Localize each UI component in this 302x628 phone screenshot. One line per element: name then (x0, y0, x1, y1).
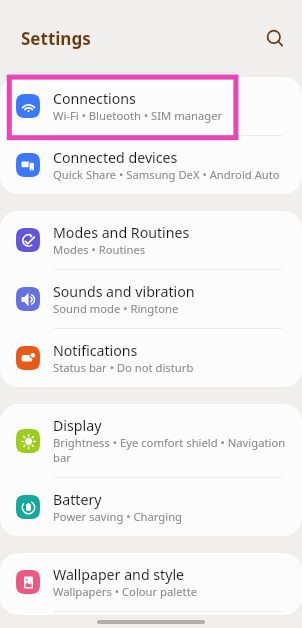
button[interactable]: Wallpaper and style (0, 553, 302, 611)
staticText: Status bar • Do not disturb (53, 360, 194, 375)
staticText: Sound mode • Ringtone (53, 301, 179, 316)
staticText: Connected devices (53, 148, 178, 167)
button[interactable]: Connected devices (0, 136, 302, 194)
staticText: Settings (21, 27, 91, 50)
staticText: Quick Share • Samsung DeX • Android Auto (53, 167, 280, 182)
staticText: Battery (53, 490, 102, 509)
staticText: Wi-Fi • Bluetooth • SIM manager (53, 108, 223, 123)
button[interactable]: Notifications (0, 329, 302, 387)
button[interactable]: Modes and Routines (0, 211, 302, 269)
staticText: Sounds and vibration (53, 282, 195, 301)
button[interactable]: Battery (0, 478, 302, 536)
staticText: Power saving • Charging (53, 509, 183, 524)
staticText: Modes and Routines (53, 223, 190, 242)
button[interactable]: Connections (0, 77, 302, 135)
button[interactable]: Sounds and vibration (0, 270, 302, 328)
staticText: Notifications (53, 341, 138, 360)
staticText: Wallpapers • Colour palette (53, 584, 198, 599)
staticText: Modes • Routines (53, 242, 146, 257)
button[interactable]: Search (258, 21, 290, 53)
staticText: Display (53, 416, 102, 435)
button[interactable]: Display (0, 404, 302, 477)
staticText: Wallpaper and style (53, 565, 185, 584)
staticText: Brightness • Eye comfort shield • Naviga… (53, 435, 294, 465)
staticText: Connections (53, 89, 136, 108)
